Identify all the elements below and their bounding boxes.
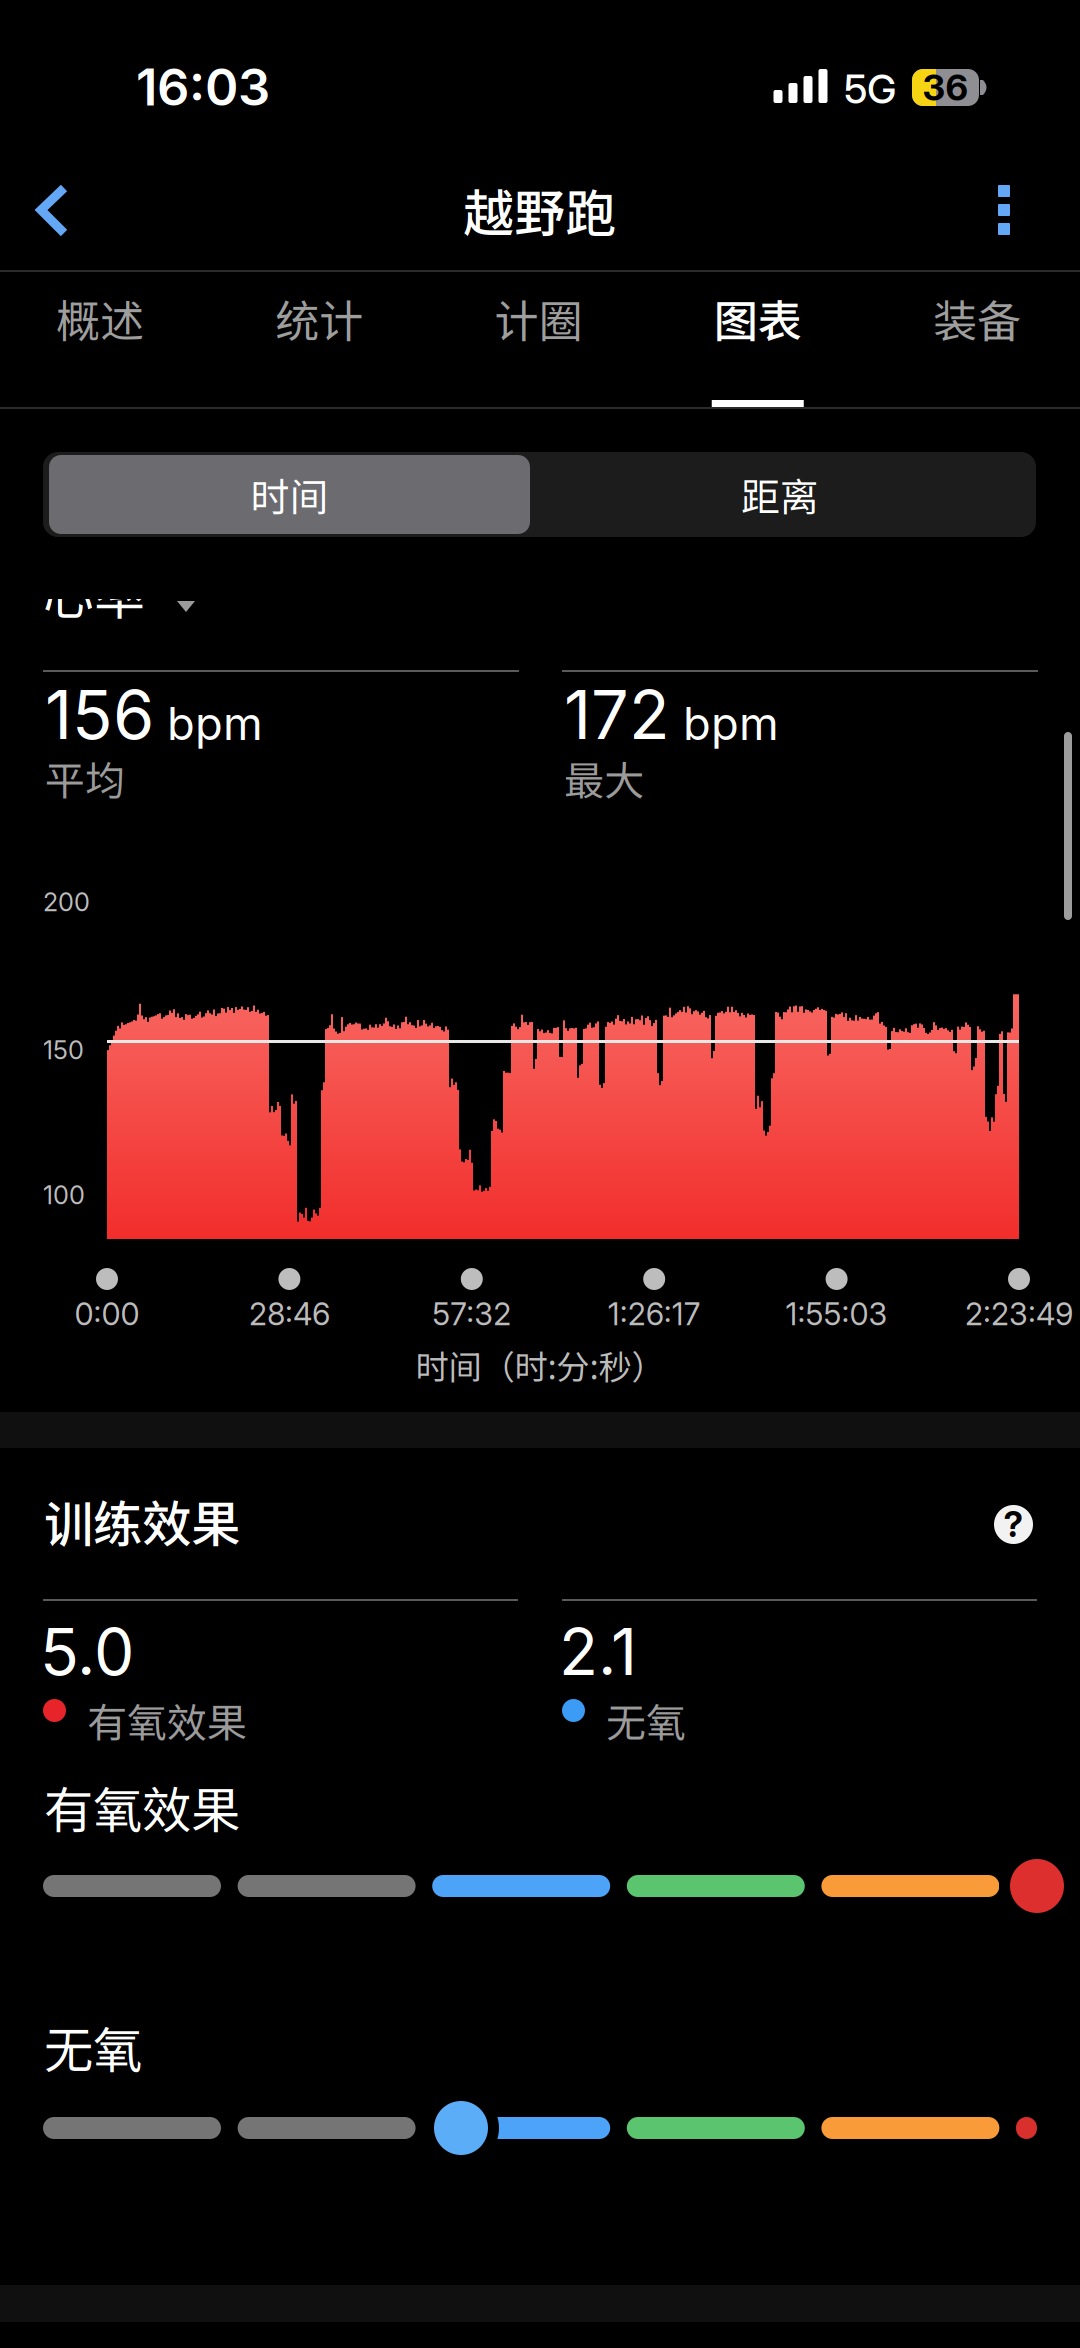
staticText: 1:26:17 <box>608 1295 701 1332</box>
staticText: 图表 <box>714 286 802 350</box>
staticText: 0:00 <box>74 1295 139 1332</box>
button[interactable]: 装备 <box>867 272 1080 407</box>
staticText: 统计 <box>275 286 363 350</box>
button[interactable]: 图表 <box>648 272 867 407</box>
staticText: 1:55:03 <box>786 1295 888 1332</box>
staticText: 训练效果 <box>44 1485 240 1556</box>
staticText: 越野跑 <box>463 173 616 247</box>
staticText: 装备 <box>933 286 1021 350</box>
button[interactable]: 帮助 <box>994 1505 1033 1544</box>
staticText: 无氧 <box>44 2011 142 2082</box>
staticText: 有氧效果 <box>87 1691 247 1749</box>
staticText: bpm <box>154 696 263 751</box>
button[interactable]: 距离 <box>530 455 1030 534</box>
button[interactable]: 统计 <box>210 272 429 407</box>
staticText: 5G <box>844 65 896 113</box>
staticText: 2.1 <box>559 1613 637 1690</box>
staticText: 150 <box>43 1035 84 1065</box>
staticText: 最大 <box>564 749 644 807</box>
staticText: 16:03 <box>136 56 270 118</box>
staticText: 时间（时:分:秒） <box>415 1341 664 1389</box>
button[interactable]: 时间 <box>49 455 530 534</box>
staticText: 100 <box>43 1180 85 1210</box>
staticText: 概述 <box>56 286 144 350</box>
staticText: 2:23:49 <box>965 1295 1073 1332</box>
staticText: 28:46 <box>249 1295 330 1332</box>
staticText: ? <box>1003 1503 1023 1545</box>
staticText: 心率 <box>43 556 145 629</box>
staticText: 200 <box>43 887 90 917</box>
staticText: 156 <box>45 674 154 755</box>
staticText: 计圈 <box>494 286 582 350</box>
staticText: 36 <box>922 66 968 109</box>
button[interactable]: 概述 <box>0 272 209 407</box>
button[interactable]: 更多选项 <box>928 150 1080 270</box>
staticText: 5.0 <box>40 1613 134 1690</box>
staticText: 时间 <box>250 466 328 522</box>
button[interactable]: 计圈 <box>429 272 648 407</box>
staticText: 有氧效果 <box>44 1771 240 1842</box>
staticText: 57:32 <box>432 1295 511 1332</box>
button[interactable]: 返回 <box>0 150 100 270</box>
staticText: 平均 <box>45 749 125 807</box>
staticText: 无氧 <box>606 1691 686 1749</box>
staticText: 172 <box>564 674 670 755</box>
staticText: 距离 <box>741 466 819 522</box>
staticText: bpm <box>670 696 779 751</box>
